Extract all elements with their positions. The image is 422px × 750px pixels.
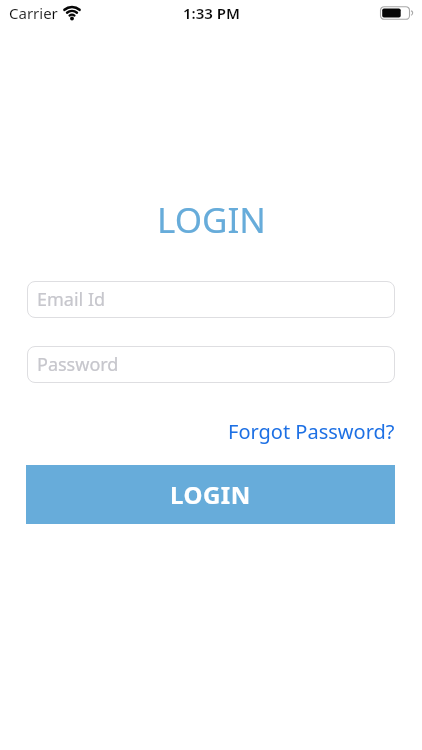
staticText: Password [37,352,119,377]
button[interactable]: LOGIN [26,465,395,524]
staticText: Forgot Password? [228,418,395,445]
button[interactable]: Forgot Password? [228,418,395,445]
staticText: Carrier [9,3,58,23]
staticText: LOGIN [157,196,266,244]
staticText: LOGIN [170,478,251,511]
staticText: 1:33 PM [183,3,240,23]
button[interactable]: Email Id [27,281,395,318]
staticText: Email Id [37,287,106,312]
button[interactable]: Password [27,346,395,383]
